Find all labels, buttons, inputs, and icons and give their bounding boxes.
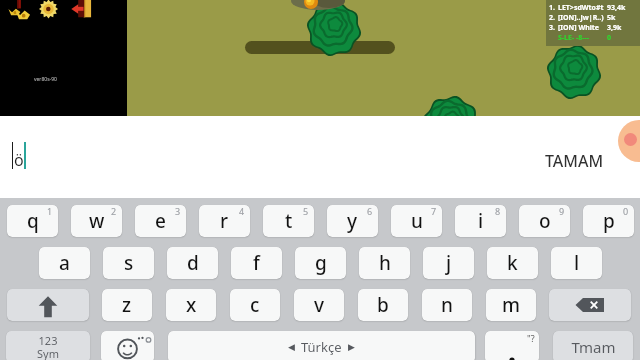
button[interactable]: i <box>455 205 506 237</box>
staticText: t <box>285 208 293 234</box>
button[interactable]: n <box>422 289 472 321</box>
button[interactable]: Backspace <box>549 289 631 321</box>
staticText: v <box>314 292 325 318</box>
staticText: 6 <box>367 205 373 217</box>
staticText: p <box>603 208 615 234</box>
staticText: 1. <box>549 3 555 13</box>
staticText: 4 <box>239 205 245 217</box>
button[interactable]: t <box>263 205 314 237</box>
staticText: 7 <box>431 205 437 217</box>
button[interactable]: a <box>39 247 90 279</box>
staticText: y <box>347 208 358 234</box>
button[interactable]: p <box>583 205 634 237</box>
staticText: s <box>124 250 134 276</box>
staticText: Türkçe <box>301 338 342 356</box>
staticText: i <box>478 208 484 234</box>
staticText: 3,9k <box>607 23 622 33</box>
staticText: 1 <box>47 205 53 217</box>
button[interactable]: e <box>135 205 186 237</box>
staticText: m <box>502 292 520 318</box>
button[interactable]: TAMAM <box>543 144 606 178</box>
staticText: r <box>220 208 229 234</box>
staticText: Tmam <box>571 337 616 357</box>
staticText: d <box>187 250 199 276</box>
button[interactable]: o <box>519 205 570 237</box>
staticText: 5k <box>607 13 616 23</box>
button[interactable]: Exit <box>69 0 92 18</box>
staticText: f <box>253 250 260 276</box>
staticText: l <box>574 250 580 276</box>
button[interactable]: r <box>199 205 250 237</box>
staticText: 3. <box>549 23 555 33</box>
staticText: 5 <box>303 205 309 217</box>
staticText: "? <box>527 332 535 344</box>
staticText: 2. <box>549 13 555 23</box>
staticText: q <box>27 208 39 234</box>
staticText: z <box>122 292 132 318</box>
staticText: [ION] White <box>558 23 600 33</box>
staticText: 123 Sym <box>37 333 59 360</box>
staticText: 93,4k <box>607 3 626 13</box>
staticText: g <box>315 250 327 276</box>
staticText: 9 <box>559 205 565 217</box>
button[interactable]: c <box>230 289 280 321</box>
button[interactable]: j <box>423 247 474 279</box>
staticText: 0 <box>607 33 612 43</box>
button[interactable]: d <box>167 247 218 279</box>
button[interactable]: x <box>166 289 216 321</box>
staticText: w <box>89 208 105 234</box>
staticText: j <box>446 250 452 276</box>
button[interactable]: f <box>231 247 282 279</box>
staticText: S-LE- -8--- <box>558 33 589 43</box>
button[interactable]: Crown <box>8 0 31 20</box>
button[interactable]: s <box>103 247 154 279</box>
staticText: e <box>155 208 166 234</box>
button[interactable]: g <box>295 247 346 279</box>
button[interactable]: Shift <box>7 289 89 321</box>
staticText: 2 <box>111 205 117 217</box>
button[interactable]: w <box>71 205 122 237</box>
button[interactable]: "? <box>485 331 539 360</box>
button[interactable]: k <box>487 247 538 279</box>
button[interactable]: Avatar <box>618 120 640 162</box>
staticText: [ION]..Jw|R..) <box>558 13 604 23</box>
button[interactable]: Emoji <box>101 331 154 360</box>
button[interactable]: l <box>551 247 602 279</box>
staticText: c <box>250 292 260 318</box>
staticText: ö <box>14 149 24 171</box>
button[interactable]: v <box>294 289 344 321</box>
staticText: u <box>411 208 423 234</box>
button[interactable]: b <box>358 289 408 321</box>
staticText: x <box>186 292 197 318</box>
button[interactable]: 123 Sym <box>6 331 90 360</box>
staticText: LET>sdWto#t <box>558 3 604 13</box>
button[interactable]: ◀ <box>168 331 475 360</box>
button[interactable]: y <box>327 205 378 237</box>
staticText: 8 <box>495 205 501 217</box>
staticText: h <box>379 250 391 276</box>
button[interactable]: z <box>102 289 152 321</box>
staticText: o <box>539 208 551 234</box>
staticText: 3 <box>175 205 181 217</box>
button[interactable]: h <box>359 247 410 279</box>
button[interactable]: Settings <box>39 0 58 19</box>
button[interactable]: u <box>391 205 442 237</box>
staticText: n <box>441 292 453 318</box>
staticText: 0 <box>623 205 629 217</box>
staticText: b <box>377 292 389 318</box>
staticText: ver80s-90 <box>34 76 57 83</box>
button[interactable]: q <box>7 205 58 237</box>
staticText: ◀ <box>288 342 295 352</box>
staticText: k <box>507 250 518 276</box>
button[interactable]: Tmam <box>553 331 633 360</box>
staticText: ▶ <box>348 342 355 352</box>
staticText: a <box>59 250 70 276</box>
button[interactable]: m <box>486 289 536 321</box>
